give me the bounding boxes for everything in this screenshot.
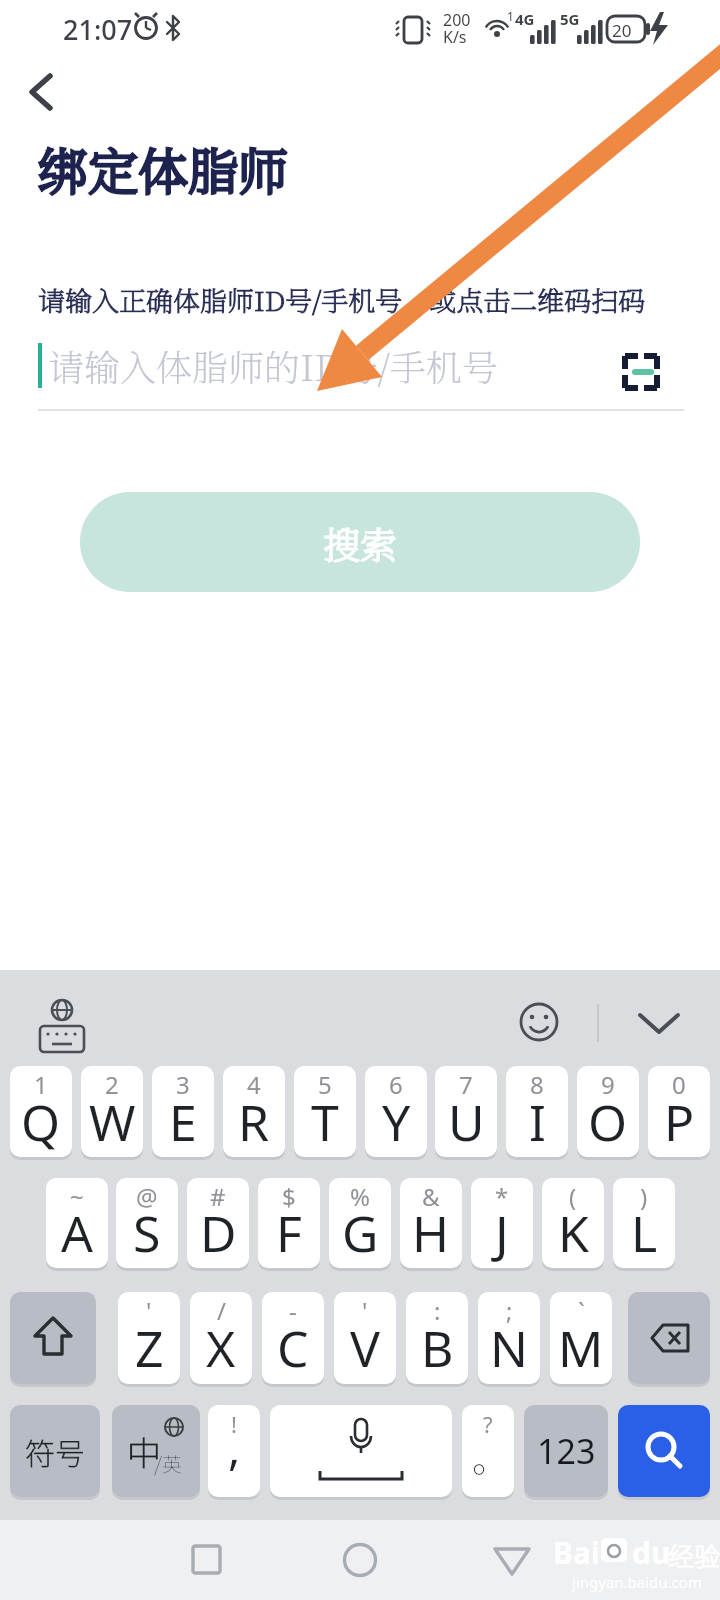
staticText: 21:07 bbox=[63, 11, 133, 48]
button[interactable]: 2 bbox=[81, 1066, 143, 1157]
button[interactable]: : bbox=[406, 1292, 468, 1384]
button[interactable]: - bbox=[262, 1292, 324, 1384]
staticText: K/s bbox=[443, 26, 467, 48]
staticText: ` bbox=[578, 1294, 585, 1327]
button[interactable]: 符号 bbox=[10, 1405, 100, 1497]
staticText: S bbox=[133, 1199, 161, 1267]
staticText: 5G bbox=[560, 9, 580, 29]
button[interactable] bbox=[332, 1532, 388, 1588]
staticText: A bbox=[61, 1199, 93, 1267]
button[interactable]: / bbox=[190, 1292, 252, 1384]
staticText: 。 bbox=[472, 1431, 509, 1483]
button[interactable] bbox=[628, 1292, 710, 1384]
staticText: O bbox=[588, 1088, 628, 1156]
staticText: ) bbox=[640, 1180, 648, 1213]
staticText: 符号 bbox=[25, 1430, 85, 1473]
button[interactable]: ? bbox=[462, 1405, 514, 1497]
staticText: 经验 bbox=[668, 1536, 720, 1574]
staticText: ; bbox=[506, 1294, 513, 1327]
staticText: 搜索 bbox=[323, 516, 397, 569]
button[interactable]: % bbox=[329, 1178, 391, 1268]
button[interactable] bbox=[484, 1532, 540, 1588]
staticText: R bbox=[238, 1088, 270, 1156]
button[interactable]: 5 bbox=[294, 1066, 356, 1157]
button[interactable]: 123 bbox=[524, 1405, 608, 1497]
button[interactable]: ) bbox=[613, 1178, 675, 1268]
button[interactable]: $ bbox=[258, 1178, 320, 1268]
button[interactable]: ( bbox=[542, 1178, 604, 1268]
staticText: 200 bbox=[443, 9, 471, 31]
button[interactable]: 3 bbox=[152, 1066, 214, 1157]
staticText: 绑定体脂师 bbox=[38, 132, 288, 204]
staticText: G bbox=[342, 1199, 379, 1267]
button[interactable]: ' bbox=[334, 1292, 396, 1384]
staticText: 1 bbox=[507, 8, 514, 24]
button[interactable] bbox=[20, 66, 64, 114]
staticText: B bbox=[421, 1314, 454, 1382]
button[interactable]: 搜索 bbox=[80, 492, 640, 592]
staticText: 经验 bbox=[668, 1536, 720, 1574]
staticText: H bbox=[412, 1199, 450, 1267]
staticText: 中 bbox=[127, 1427, 161, 1476]
staticText: 请输入体脂师的ID号/手机号 bbox=[48, 340, 498, 392]
staticText: 中 bbox=[127, 1427, 161, 1476]
button[interactable]: & bbox=[400, 1178, 462, 1268]
staticText: 2 bbox=[105, 1068, 119, 1101]
staticText: T bbox=[311, 1088, 339, 1156]
button[interactable]: ` bbox=[550, 1292, 612, 1384]
staticText: N bbox=[490, 1314, 528, 1382]
button[interactable]: * bbox=[471, 1178, 533, 1268]
staticText: 7 bbox=[459, 1068, 473, 1101]
staticText: F bbox=[276, 1199, 302, 1267]
button[interactable]: 0 bbox=[648, 1066, 710, 1157]
staticText: 搜索 bbox=[323, 516, 397, 569]
button[interactable]: 4 bbox=[223, 1066, 285, 1157]
staticText: V bbox=[350, 1314, 380, 1382]
staticText: D bbox=[200, 1199, 237, 1267]
staticText: 20 bbox=[612, 19, 632, 42]
button[interactable]: ' bbox=[118, 1292, 180, 1384]
staticText: % bbox=[350, 1180, 370, 1213]
button[interactable] bbox=[618, 349, 664, 395]
staticText: du bbox=[632, 1532, 671, 1573]
staticText: I bbox=[529, 1088, 546, 1156]
button[interactable]: ~ bbox=[46, 1178, 108, 1268]
staticText: & bbox=[422, 1180, 440, 1213]
staticText: ( bbox=[569, 1180, 577, 1213]
staticText: K bbox=[558, 1199, 589, 1267]
staticText: 4 bbox=[247, 1068, 261, 1101]
staticText: 6 bbox=[389, 1068, 403, 1101]
staticText: W bbox=[89, 1088, 136, 1156]
staticText: X bbox=[206, 1314, 236, 1382]
button[interactable] bbox=[10, 1292, 96, 1384]
button[interactable]: 7 bbox=[435, 1066, 497, 1157]
button[interactable]: 8 bbox=[506, 1066, 568, 1157]
staticText: 3 bbox=[176, 1068, 190, 1101]
button[interactable]: 1 bbox=[10, 1066, 72, 1157]
button[interactable] bbox=[270, 1405, 452, 1497]
staticText: @ bbox=[136, 1180, 158, 1213]
button[interactable]: @ bbox=[116, 1178, 178, 1268]
button[interactable] bbox=[178, 1532, 234, 1588]
staticText: / bbox=[217, 1294, 226, 1327]
staticText: 5 bbox=[318, 1068, 332, 1101]
staticText: Z bbox=[135, 1314, 164, 1382]
button[interactable]: # bbox=[187, 1178, 249, 1268]
staticText: /英 bbox=[154, 1449, 182, 1478]
staticText: 绑定体脂师 bbox=[38, 132, 288, 204]
staticText: ? bbox=[483, 1409, 493, 1439]
button[interactable]: ; bbox=[478, 1292, 540, 1384]
staticText: J bbox=[495, 1199, 509, 1267]
button[interactable] bbox=[618, 1405, 710, 1497]
staticText: C bbox=[277, 1314, 309, 1382]
staticText: E bbox=[169, 1088, 197, 1156]
staticText: 9 bbox=[601, 1068, 615, 1101]
button[interactable]: ! bbox=[208, 1405, 260, 1497]
staticText: Y bbox=[382, 1088, 411, 1156]
button[interactable]: 9 bbox=[577, 1066, 639, 1157]
staticText: L bbox=[631, 1199, 658, 1267]
button[interactable]: 6 bbox=[365, 1066, 427, 1157]
button[interactable]: 中 bbox=[112, 1405, 200, 1497]
staticText: M bbox=[558, 1314, 604, 1382]
staticText: ! bbox=[231, 1409, 237, 1439]
